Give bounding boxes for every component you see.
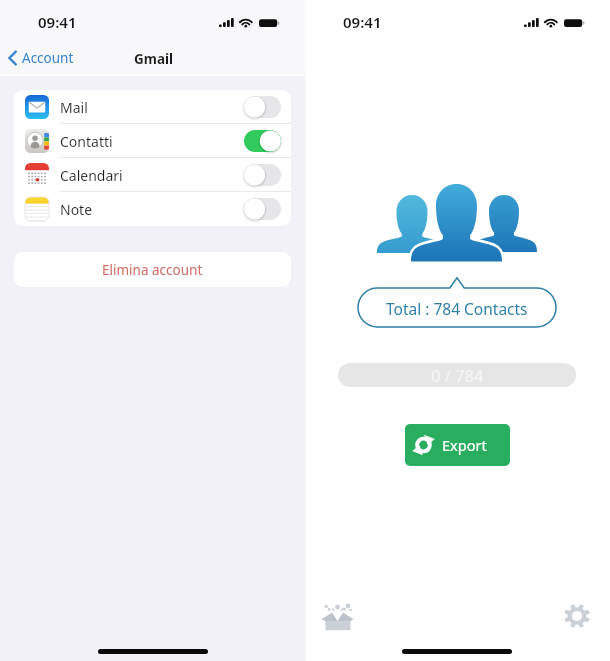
button[interactable]: Settings xyxy=(564,604,590,628)
staticText: Note xyxy=(60,200,93,219)
staticText: Contatti xyxy=(60,132,113,151)
staticText: 09:41 xyxy=(38,12,77,32)
button[interactable]: Account xyxy=(4,45,82,71)
staticText: Total : 784 Contacts xyxy=(386,298,528,319)
button[interactable]: Mail xyxy=(14,90,291,124)
staticText: Gmail xyxy=(134,50,174,68)
button[interactable]: Calendari xyxy=(14,158,291,192)
staticText: Account xyxy=(22,49,74,67)
button[interactable]: Contatti xyxy=(14,124,291,158)
staticText: Calendari xyxy=(60,166,123,185)
staticText: 09:41 xyxy=(343,12,382,32)
button[interactable]: Elimina account xyxy=(14,252,291,287)
staticText: Export xyxy=(442,435,487,455)
staticText: Mail xyxy=(60,98,88,117)
button[interactable]: Restore contacts from backup xyxy=(321,601,354,631)
button[interactable]: Export xyxy=(405,424,510,466)
staticText: Elimina account xyxy=(102,261,203,279)
staticText: 0 / 784 xyxy=(431,364,484,386)
button[interactable]: Note xyxy=(14,192,291,226)
